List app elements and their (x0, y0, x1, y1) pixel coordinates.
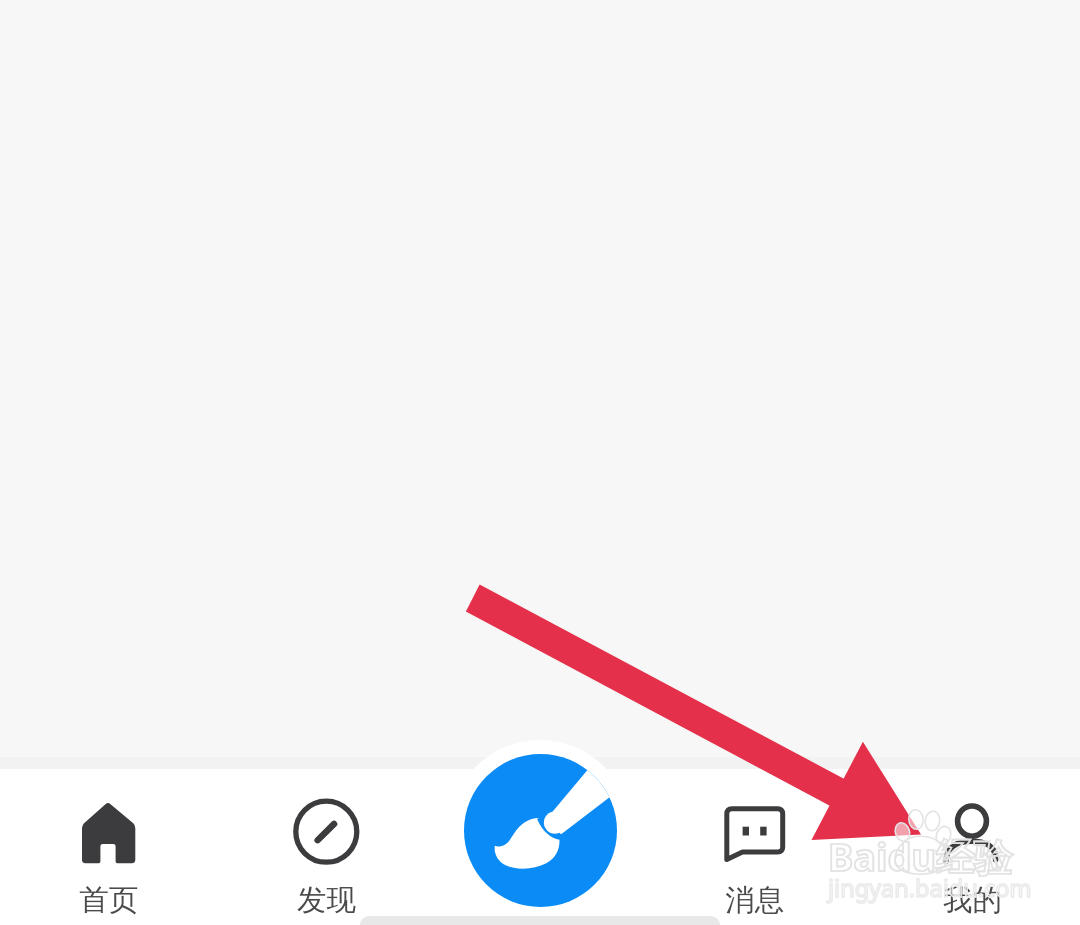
staticText: 首页 (79, 882, 138, 919)
staticText: 发现 (297, 882, 356, 919)
button[interactable]: 我的 (882, 769, 1062, 925)
staticText: 我的 (943, 882, 1002, 919)
staticText: 消息 (725, 882, 784, 919)
staticText: jingyan.baidu.com (828, 872, 1032, 904)
button[interactable]: 首页 (18, 769, 198, 925)
button[interactable]: Create (464, 754, 617, 907)
button[interactable]: 消息 (664, 769, 844, 925)
button[interactable]: 发现 (236, 769, 416, 925)
staticText: Baidu经验 (828, 830, 1013, 882)
